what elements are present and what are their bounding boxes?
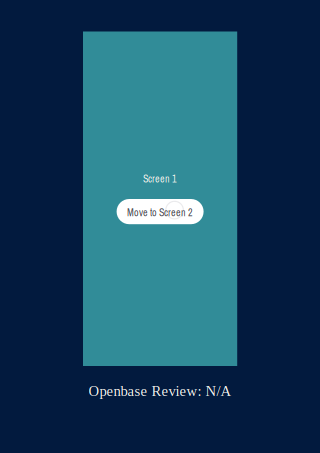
staticText: Screen 1 xyxy=(143,172,177,186)
button[interactable]: Move to Screen 2 xyxy=(117,199,204,224)
staticText: Move to Screen 2 xyxy=(127,206,193,219)
staticText: Openbase Review: N/A xyxy=(88,383,231,399)
